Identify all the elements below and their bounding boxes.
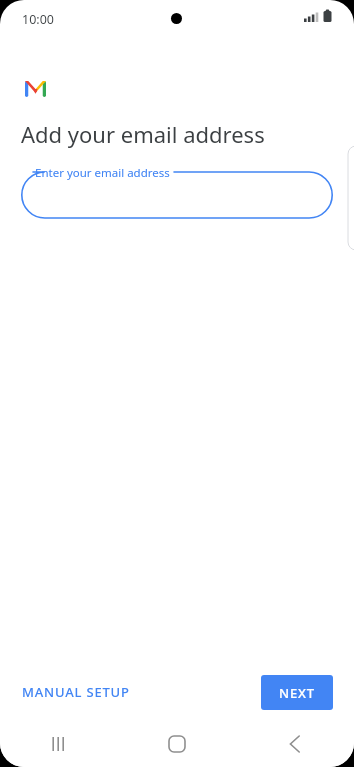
- staticText: Enter your email address: [35, 165, 170, 181]
- staticText: Add your email address: [21, 119, 265, 149]
- button[interactable]: NEXT: [261, 675, 333, 710]
- staticText: MANUAL SETUP: [22, 683, 130, 701]
- button[interactable]: Back: [236, 720, 354, 767]
- button[interactable]: Home: [118, 720, 236, 767]
- button[interactable]: Enter your email address: [21, 165, 333, 225]
- staticText: 10:00: [22, 11, 54, 28]
- button[interactable]: MANUAL SETUP: [14, 675, 138, 709]
- button[interactable]: Recent apps: [0, 720, 118, 767]
- staticText: NEXT: [279, 684, 315, 702]
